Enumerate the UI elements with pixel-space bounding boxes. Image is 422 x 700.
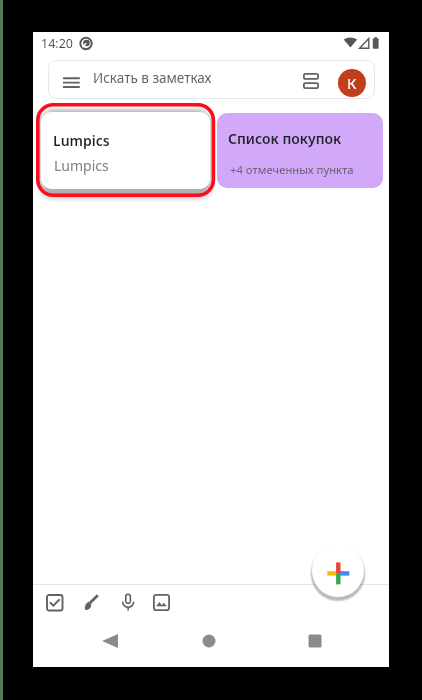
button[interactable] <box>115 590 141 616</box>
staticText: Lumpics <box>53 131 110 150</box>
staticText: +4 отмеченных пункта <box>230 162 354 177</box>
staticText: Lumpics <box>54 156 109 175</box>
button[interactable]: Искать в заметках <box>48 60 375 99</box>
button[interactable] <box>42 590 68 616</box>
staticText: Список покупок <box>228 129 342 148</box>
staticText: 14:20 <box>41 35 73 52</box>
button[interactable] <box>96 628 122 654</box>
button[interactable] <box>196 628 222 654</box>
staticText: К <box>347 73 357 93</box>
button[interactable]: К <box>338 69 366 97</box>
button[interactable] <box>149 590 175 616</box>
button[interactable] <box>302 628 328 654</box>
button[interactable]: Список покупок <box>217 113 383 188</box>
button[interactable]: Lumpics <box>41 112 210 189</box>
staticText: Искать в заметках <box>93 69 212 87</box>
button[interactable] <box>78 590 104 616</box>
button[interactable] <box>312 545 364 597</box>
